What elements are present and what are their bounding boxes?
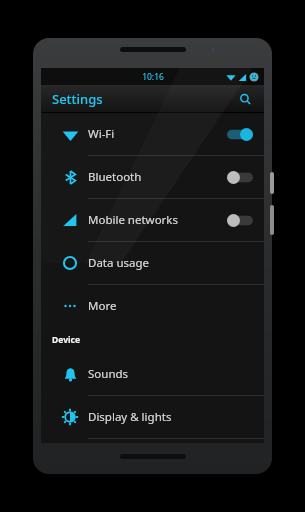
staticText: Settings — [52, 90, 103, 108]
staticText: 10:16 — [142, 71, 164, 83]
button[interactable]: Switch off — [227, 171, 253, 184]
button[interactable]: More — [41, 285, 264, 327]
button[interactable]: Sounds — [41, 353, 264, 395]
staticText: Display & lights — [88, 409, 172, 425]
button[interactable]: Search — [234, 88, 256, 110]
staticText: Wi-Fi — [88, 126, 115, 142]
staticText: Data usage — [88, 255, 150, 271]
staticText: Bluetooth — [88, 169, 142, 185]
button[interactable]: Display & lights — [41, 396, 264, 438]
button[interactable]: Bluetooth — [41, 156, 264, 198]
staticText: Sounds — [88, 366, 129, 382]
button[interactable]: Switch on — [227, 128, 253, 141]
staticText: More — [88, 298, 117, 314]
button[interactable]: Data usage — [41, 242, 264, 284]
button[interactable]: Mobile networks — [41, 199, 264, 241]
staticText: Mobile networks — [88, 212, 179, 228]
button[interactable]: Wi-Fi — [41, 113, 264, 155]
staticText: Device — [52, 334, 80, 346]
button[interactable]: Switch off — [227, 214, 253, 227]
